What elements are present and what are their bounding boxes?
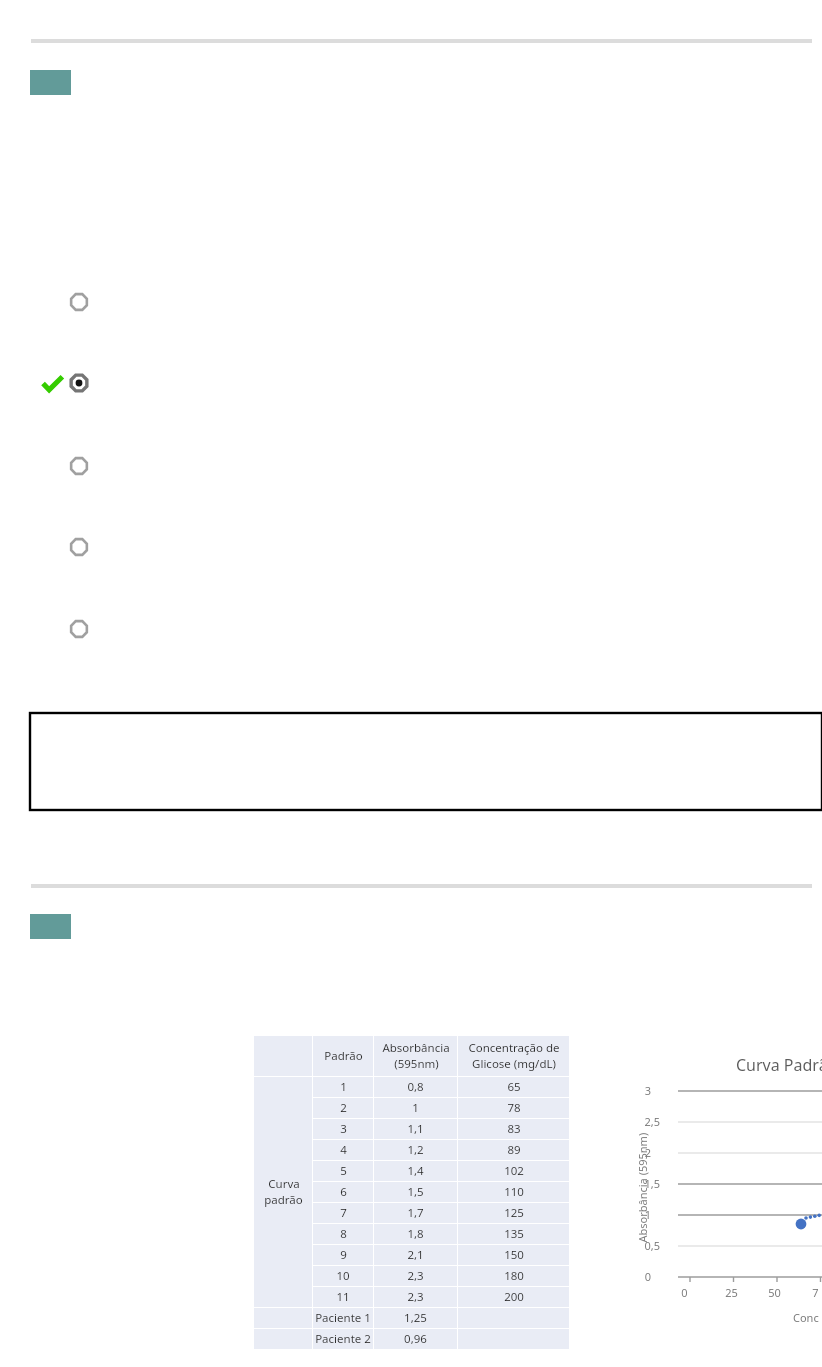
staticText: 1,8: [407, 1226, 424, 1242]
staticText: 5: [340, 1163, 347, 1179]
staticText: 10: [336, 1268, 350, 1284]
staticText: 1: [644, 1207, 651, 1222]
staticText: 0,5: [644, 1238, 660, 1253]
staticText: 25: [725, 1285, 738, 1300]
staticText: 2,5: [644, 1114, 660, 1129]
button[interactable]: Selected answer option: [68, 372, 90, 394]
staticText: Absorbância (595nm): [634, 1132, 649, 1242]
staticText: 1: [340, 1079, 347, 1095]
staticText: 1,4: [407, 1163, 424, 1179]
staticText: 135: [504, 1226, 524, 1242]
staticText: 11: [336, 1289, 350, 1305]
staticText: Curva Padrão: [736, 1054, 822, 1076]
staticText: Curva: [268, 1176, 300, 1192]
staticText: 1,7: [407, 1205, 424, 1221]
staticText: 4: [340, 1142, 347, 1158]
staticText: 2: [644, 1145, 651, 1160]
staticText: Conc: [793, 1310, 819, 1325]
staticText: 3: [644, 1083, 651, 1098]
staticText: 102: [504, 1163, 524, 1179]
staticText: Glicose (mg/dL): [472, 1056, 556, 1072]
staticText: 6: [340, 1184, 347, 1200]
staticText: 50: [768, 1285, 781, 1300]
staticText: 1,5: [644, 1176, 660, 1191]
staticText: 1,25: [404, 1310, 427, 1326]
staticText: 89: [507, 1142, 521, 1158]
staticText: Paciente 1: [315, 1310, 371, 1326]
staticText: 1: [412, 1100, 419, 1116]
staticText: 7: [812, 1285, 819, 1300]
button[interactable]: Answer option: [68, 536, 90, 558]
staticText: 2,3: [407, 1289, 424, 1305]
staticText: 8: [340, 1226, 347, 1242]
button[interactable]: Answer option: [68, 455, 90, 477]
staticText: 2,3: [407, 1268, 424, 1284]
staticText: 65: [507, 1079, 521, 1095]
staticText: 0,8: [407, 1079, 424, 1095]
staticText: Padrão: [324, 1048, 363, 1064]
staticText: 125: [504, 1205, 524, 1221]
staticText: 2: [340, 1100, 347, 1116]
staticText: 1,1: [407, 1121, 424, 1137]
staticText: 200: [504, 1289, 524, 1305]
staticText: 9: [340, 1247, 347, 1263]
staticText: 3: [340, 1121, 347, 1137]
staticText: 1,2: [407, 1142, 424, 1158]
staticText: 110: [504, 1184, 524, 1200]
button[interactable]: Answer text area: [30, 713, 822, 810]
staticText: Absorbância: [382, 1040, 450, 1056]
staticText: 150: [504, 1247, 524, 1263]
button[interactable]: Answer option: [68, 618, 90, 640]
staticText: padrão: [264, 1192, 303, 1208]
staticText: 0: [681, 1285, 688, 1300]
staticText: 180: [504, 1268, 524, 1284]
staticText: 7: [340, 1205, 347, 1221]
button[interactable]: Padrão: [254, 1036, 569, 1349]
staticText: 2,1: [407, 1247, 424, 1263]
button[interactable]: Answer option: [68, 291, 90, 313]
staticText: Paciente 2: [315, 1331, 371, 1347]
staticText: 78: [507, 1100, 521, 1116]
staticText: 1,5: [407, 1184, 424, 1200]
staticText: (595nm): [394, 1056, 439, 1072]
staticText: 0: [644, 1269, 651, 1284]
staticText: 83: [507, 1121, 521, 1137]
staticText: Concentração de: [468, 1040, 560, 1056]
staticText: 0,96: [404, 1331, 427, 1347]
